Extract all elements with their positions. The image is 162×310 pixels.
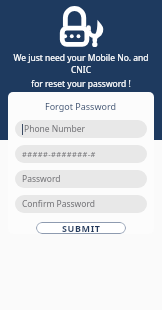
staticText: Confirm Password [22, 198, 95, 210]
staticText: Phone Number [24, 123, 85, 135]
staticText: Password [22, 173, 61, 185]
button[interactable]: #####-#######-# [15, 145, 147, 163]
button[interactable]: Password [15, 170, 147, 188]
staticText: #####-#######-# [22, 149, 96, 159]
staticText: We just need your Mobile No. and CNIC [6, 52, 156, 76]
button[interactable]: SUBMIT [36, 222, 126, 234]
staticText: SUBMIT [62, 222, 101, 234]
button[interactable]: Confirm Password [15, 195, 147, 213]
staticText: for reset your password ! [31, 78, 131, 90]
button[interactable]: Phone Number [15, 120, 147, 138]
staticText: Forgot Password [45, 100, 117, 112]
other: Forgot password lock [58, 6, 104, 48]
